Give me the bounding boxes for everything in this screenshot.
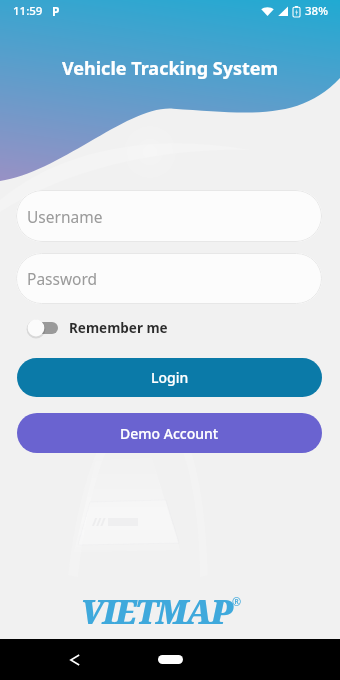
staticText: Login: [151, 368, 189, 387]
staticText: Remember me: [69, 319, 168, 337]
staticText: 38%: [305, 3, 328, 19]
staticText: 11:59: [13, 3, 43, 19]
button[interactable]: Demo Account: [17, 413, 322, 453]
button[interactable]: Username: [16, 190, 322, 242]
staticText: Password: [27, 268, 98, 289]
button[interactable]: Home: [158, 655, 183, 664]
button[interactable]: Remember me: [26, 315, 168, 341]
button[interactable]: Back: [62, 647, 88, 673]
button[interactable]: Password: [16, 253, 322, 304]
staticText: Vehicle Tracking System: [0, 56, 340, 81]
staticText: ®: [232, 594, 242, 609]
staticText: VIETMAP: [80, 589, 232, 634]
button[interactable]: Login: [17, 358, 322, 397]
staticText: P: [52, 3, 60, 19]
staticText: Demo Account: [120, 424, 219, 443]
staticText: Username: [27, 206, 103, 227]
